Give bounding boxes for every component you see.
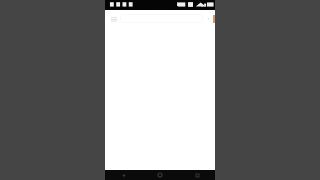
button[interactable]: Recent apps (192, 170, 202, 180)
button[interactable]: More options (205, 15, 212, 22)
button[interactable]: Back (118, 170, 128, 180)
button[interactable]: Home (155, 170, 165, 180)
button[interactable]: Open navigation menu (108, 13, 119, 24)
